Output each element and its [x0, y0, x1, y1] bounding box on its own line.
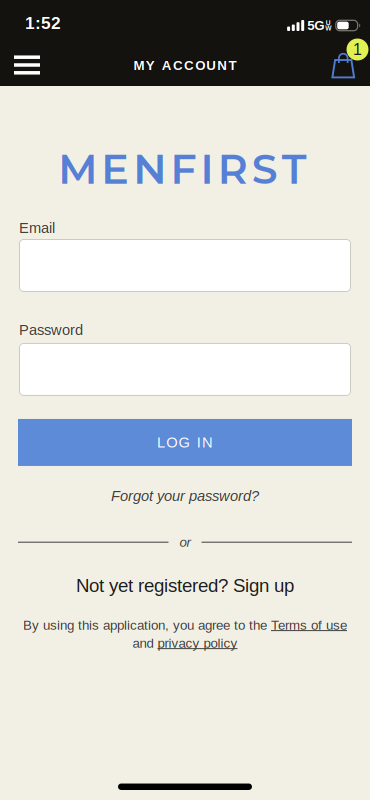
staticText: G: [178, 434, 189, 450]
staticText: N: [202, 434, 213, 450]
staticText: U: [326, 19, 331, 26]
staticText: R: [218, 144, 248, 194]
button[interactable]: Menu: [0, 46, 40, 75]
staticText: T: [282, 144, 307, 194]
staticText: U: [206, 58, 216, 73]
button[interactable]: Terms of use: [271, 618, 347, 632]
button[interactable]: Not yet registered? Sign up: [76, 575, 294, 596]
staticText: By using this application, you agree to …: [23, 618, 271, 632]
staticText: and: [132, 636, 157, 650]
staticText: A: [162, 58, 172, 73]
staticText: Not yet registered? Sign up: [76, 575, 294, 596]
staticText: N: [217, 58, 227, 73]
staticText: Email: [19, 220, 55, 236]
staticText: S: [252, 144, 278, 194]
staticText: T: [228, 58, 236, 73]
staticText: privacy policy: [157, 636, 237, 650]
staticText: 5G: [307, 18, 324, 33]
staticText: Y: [146, 58, 155, 73]
staticText: Terms of use: [271, 618, 347, 632]
staticText: C: [173, 58, 183, 73]
staticText: M: [134, 58, 145, 73]
button[interactable]: Email: [0, 239, 370, 292]
staticText: E: [101, 144, 129, 194]
staticText: L: [157, 434, 165, 450]
staticText: I: [197, 434, 201, 450]
button[interactable]: L: [18, 419, 352, 466]
staticText: 1:52: [25, 14, 61, 32]
button[interactable]: Password: [0, 343, 370, 396]
staticText: or: [179, 535, 190, 549]
staticText: O: [195, 58, 205, 73]
staticText: Forgot your password?: [111, 488, 259, 504]
staticText: C: [184, 58, 194, 73]
staticText: O: [166, 434, 177, 450]
staticText: M: [58, 144, 97, 194]
staticText: W: [325, 24, 331, 32]
staticText: N: [133, 144, 166, 194]
staticText: Password: [19, 322, 83, 338]
button[interactable]: Cart, 1 item: [331, 38, 370, 82]
button[interactable]: privacy policy: [157, 636, 237, 650]
button[interactable]: Forgot your password?: [111, 488, 259, 504]
staticText: 1: [353, 41, 362, 58]
staticText: F: [170, 144, 196, 194]
staticText: I: [201, 144, 214, 194]
